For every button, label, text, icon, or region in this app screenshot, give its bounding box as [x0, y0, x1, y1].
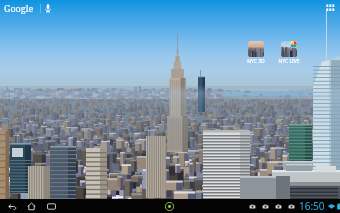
button[interactable]: Apps — [324, 1, 337, 14]
staticText: 16:50 — [299, 199, 325, 213]
staticText: NYC 3D — [240, 58, 272, 65]
button[interactable]: 16:50 — [299, 199, 340, 213]
button[interactable]: NYC LIVE — [273, 41, 305, 65]
button[interactable]: Back — [3, 199, 22, 213]
other: Voice search — [45, 4, 51, 13]
button[interactable]: Screen recording — [163, 200, 175, 212]
button[interactable]: Google — [4, 1, 51, 15]
button[interactable]: NYC 3D — [240, 41, 272, 65]
button[interactable]: Recent apps — [42, 199, 61, 213]
button[interactable]: Home — [22, 199, 41, 213]
staticText: NYC LIVE — [273, 58, 305, 65]
staticText: Google — [4, 2, 34, 14]
